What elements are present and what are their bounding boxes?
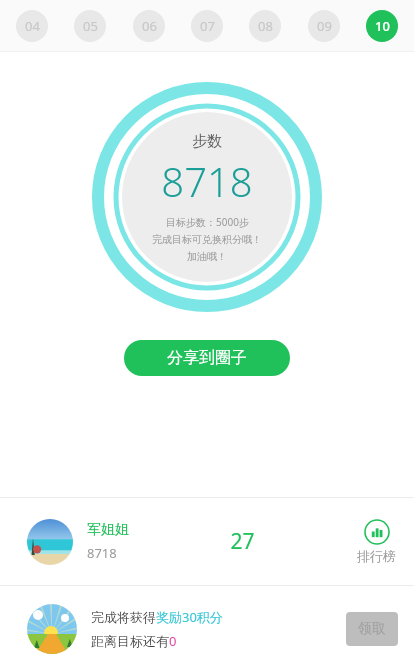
button[interactable]: 09 [308, 10, 340, 42]
staticText: 8718 [87, 544, 117, 562]
staticText: 加油哦！ [187, 250, 227, 263]
button[interactable]: 04 [16, 10, 48, 42]
button[interactable]: 排行榜 [357, 519, 396, 564]
staticText: 步数 [192, 132, 222, 151]
staticText: 排行榜 [357, 548, 396, 564]
button[interactable]: 领取 [346, 612, 398, 646]
staticText: 10 [375, 17, 390, 35]
staticText: 距离目标还有0 [91, 632, 177, 650]
staticText: 05 [83, 17, 98, 35]
button[interactable]: 军姐姐 [0, 498, 414, 585]
staticText: 分享到圈子 [167, 348, 247, 368]
button[interactable]: 07 [191, 10, 223, 42]
staticText: 8718 [161, 154, 253, 208]
button[interactable]: 分享到圈子 [124, 340, 290, 376]
staticText: 27 [230, 527, 255, 556]
button[interactable]: 08 [249, 10, 281, 42]
staticText: 军姐姐 [87, 521, 129, 539]
staticText: 06 [142, 17, 157, 35]
staticText: 07 [200, 17, 215, 35]
staticText: 领取 [358, 620, 386, 638]
button[interactable]: 05 [74, 10, 106, 42]
staticText: 完成将获得奖励30积分 [91, 608, 223, 626]
staticText: 目标步数：5000步 [166, 215, 249, 229]
button[interactable]: 10 [366, 10, 398, 42]
staticText: 04 [25, 17, 40, 35]
button[interactable]: 完成将获得奖励30积分 [0, 586, 414, 672]
staticText: 完成目标可兑换积分哦！ [152, 233, 262, 246]
staticText: 08 [258, 17, 273, 35]
button[interactable]: 06 [133, 10, 165, 42]
staticText: 09 [317, 17, 332, 35]
